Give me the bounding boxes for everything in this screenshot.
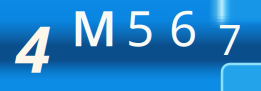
staticText: M [71, 0, 117, 60]
staticText: 5 [126, 0, 154, 60]
staticText: 7 [218, 12, 242, 66]
staticText: 4 [15, 5, 50, 90]
staticText: 6 [169, 0, 197, 60]
